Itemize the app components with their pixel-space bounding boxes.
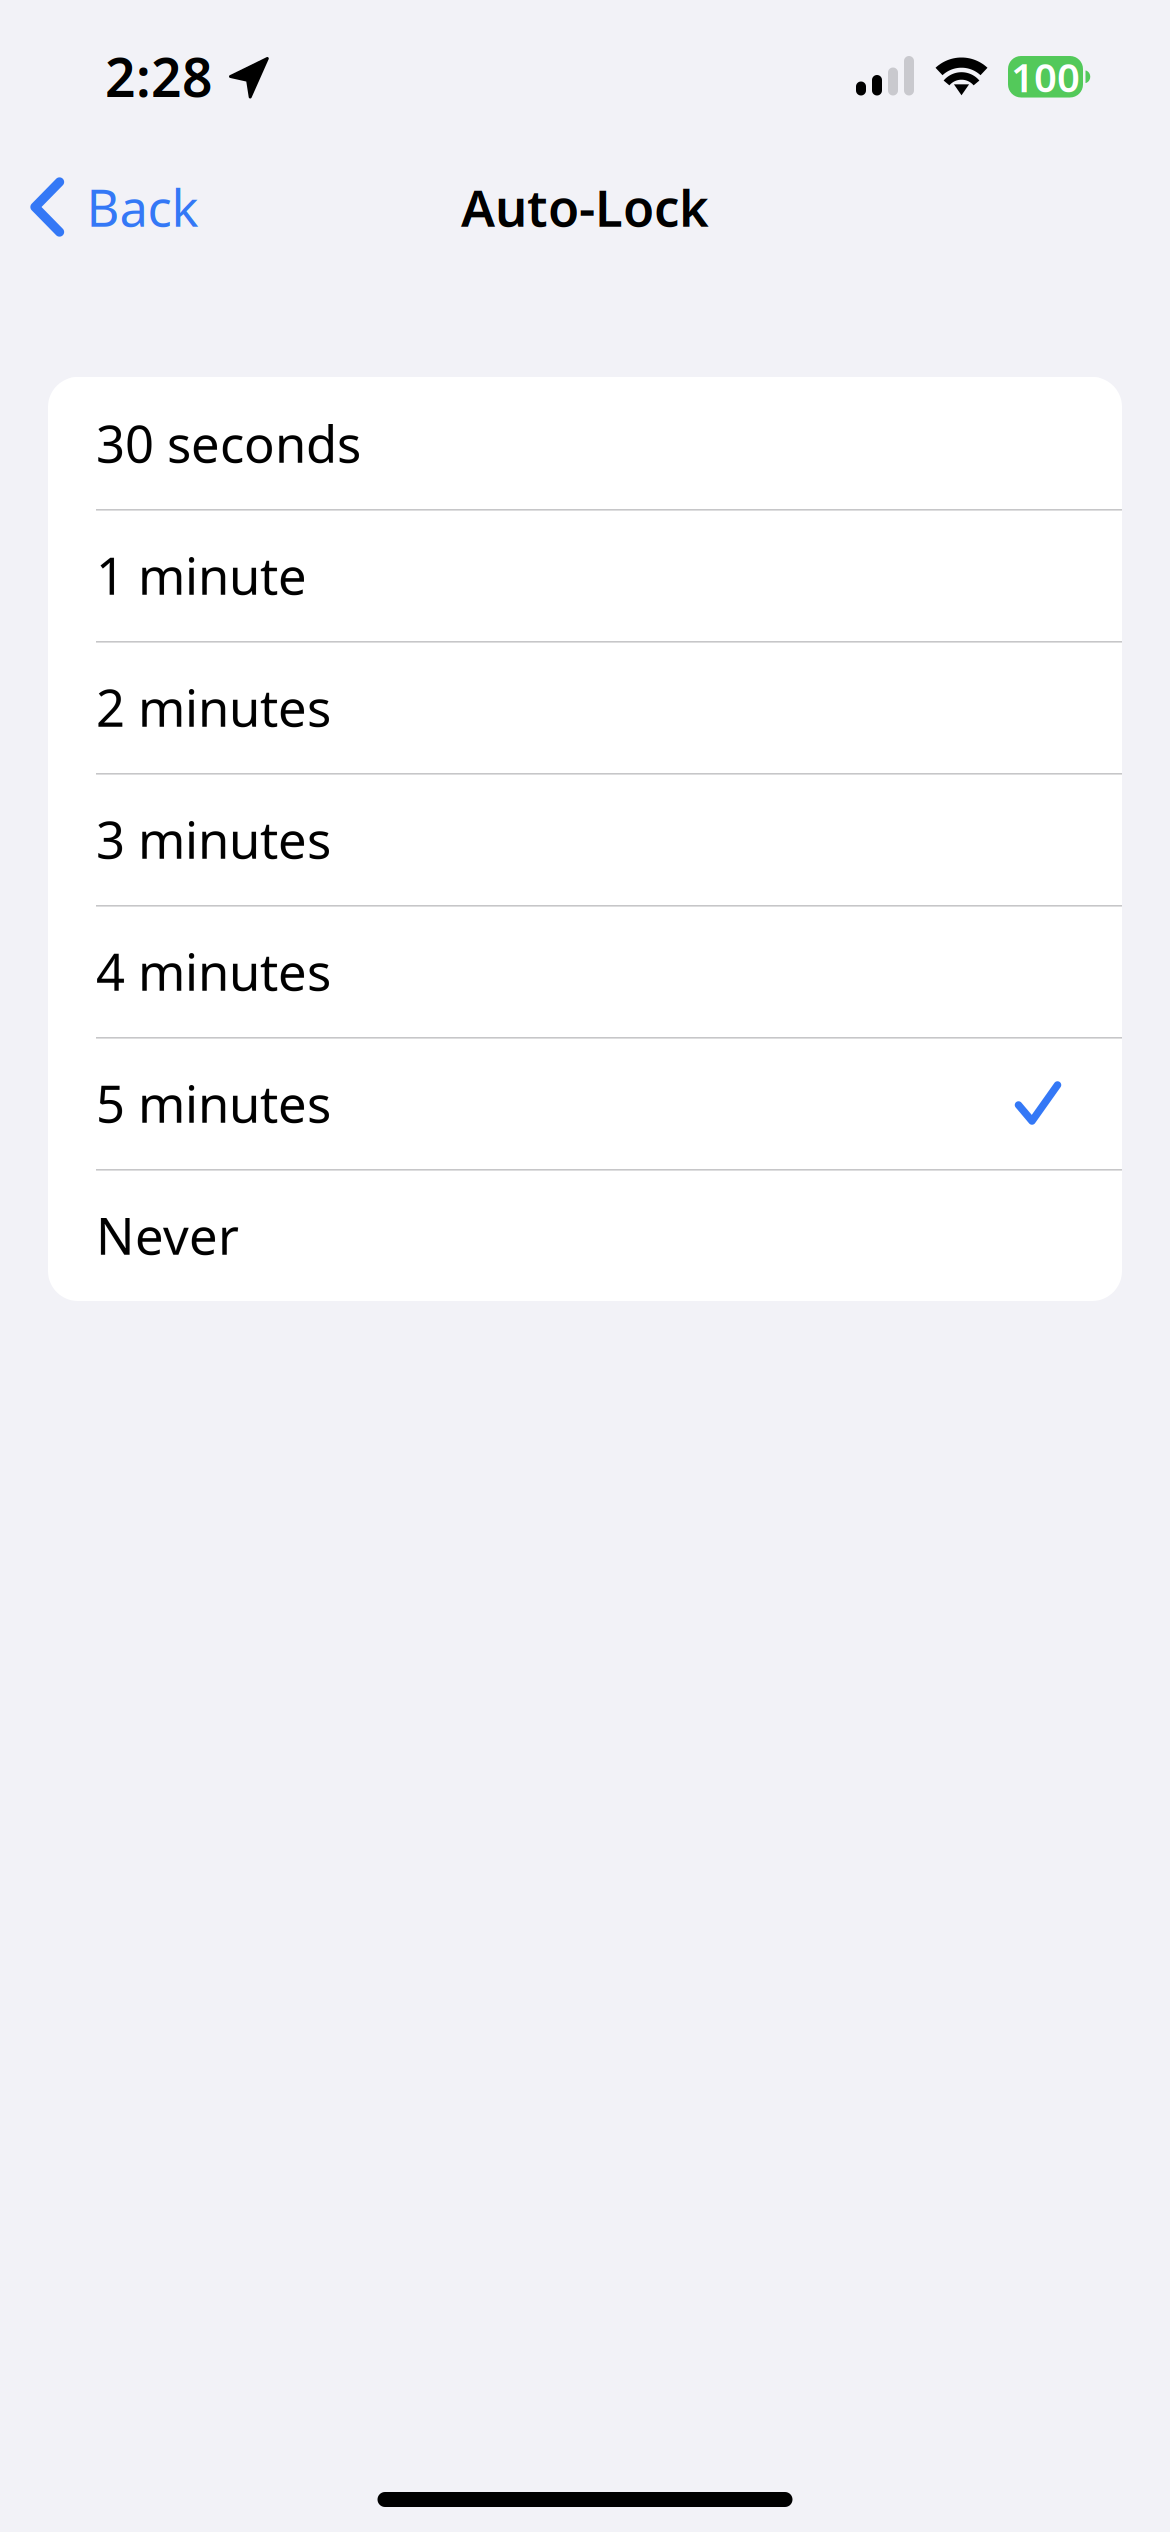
- staticText: 3 minutes: [96, 805, 331, 873]
- staticText: 5 minutes: [96, 1069, 331, 1137]
- staticText: Auto-Lock: [461, 173, 709, 241]
- staticText: 2 minutes: [96, 673, 331, 741]
- staticText: 100: [1011, 50, 1080, 103]
- staticText: 2:28: [105, 41, 213, 112]
- button[interactable]: Back: [0, 141, 222, 273]
- button[interactable]: 4 minutes: [48, 905, 1122, 1037]
- button[interactable]: 2 minutes: [48, 641, 1122, 773]
- button[interactable]: 1 minute: [48, 509, 1122, 641]
- button[interactable]: 30 seconds: [48, 377, 1122, 509]
- staticText: 30 seconds: [96, 409, 361, 477]
- button[interactable]: 3 minutes: [48, 773, 1122, 905]
- staticText: Never: [96, 1201, 239, 1269]
- staticText: 1 minute: [96, 541, 307, 609]
- button[interactable]: 5 minutes: [48, 1037, 1122, 1169]
- button[interactable]: Never: [48, 1169, 1122, 1301]
- staticText: 4 minutes: [96, 937, 331, 1005]
- staticText: Back: [86, 173, 198, 241]
